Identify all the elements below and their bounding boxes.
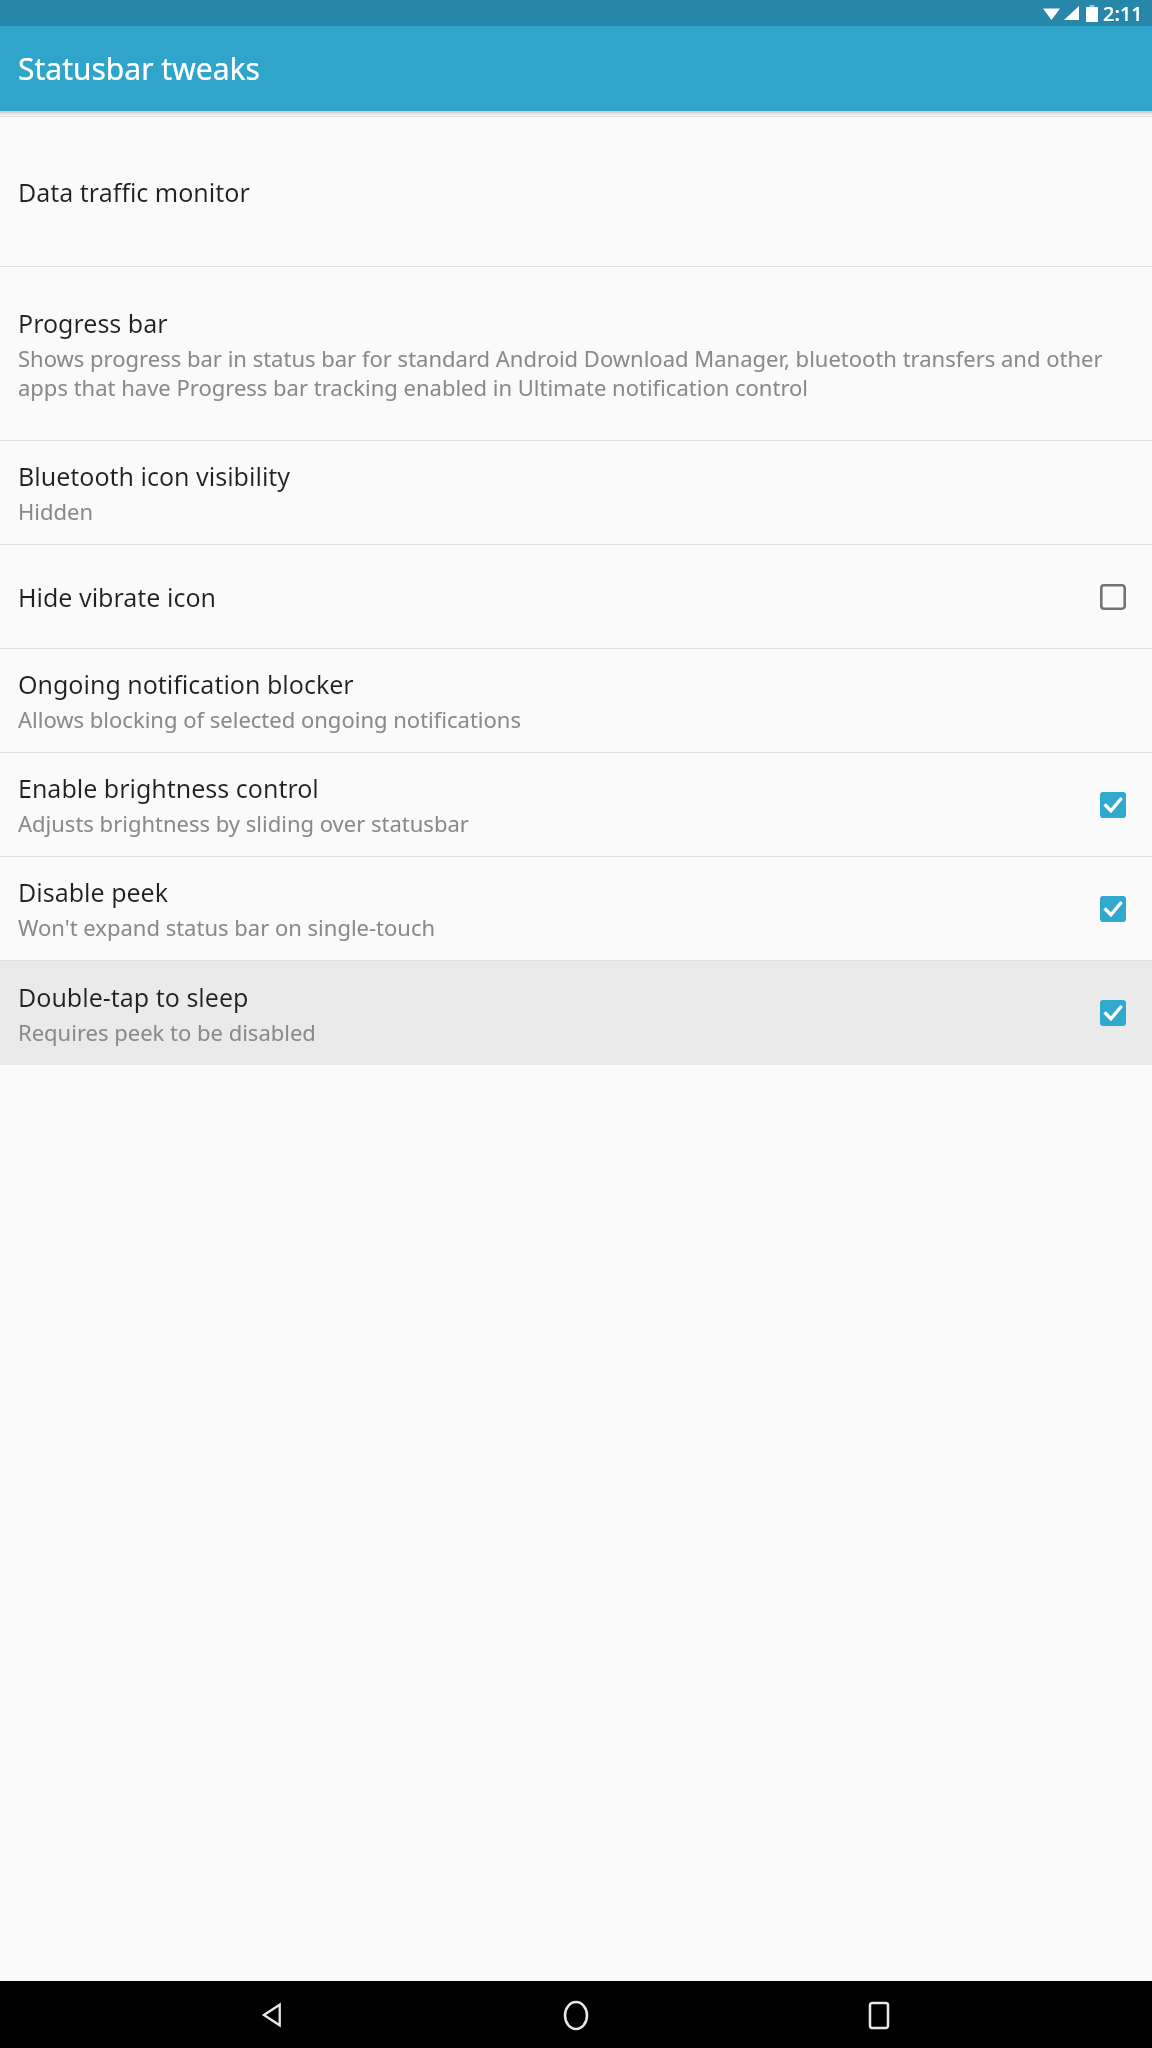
button[interactable]: Checked	[1096, 892, 1130, 926]
button[interactable]: Unchecked	[1096, 580, 1130, 614]
button[interactable]: Home	[546, 1985, 606, 2045]
button[interactable]: Enable brightness control	[0, 753, 1152, 856]
staticText: Ongoing notification blocker	[18, 667, 354, 701]
staticText: Bluetooth icon visibility	[18, 459, 291, 493]
button[interactable]: Data traffic monitor	[0, 117, 1152, 266]
staticText: Allows blocking of selected ongoing noti…	[18, 704, 521, 734]
button[interactable]: Disable peek	[0, 857, 1152, 960]
staticText: Double-tap to sleep	[18, 980, 249, 1014]
staticText: Progress bar	[18, 306, 168, 340]
staticText: Adjusts brightness by sliding over statu…	[18, 808, 469, 838]
staticText: Shows progress bar in status bar for sta…	[18, 343, 1130, 402]
staticText: Enable brightness control	[18, 771, 319, 805]
staticText: Hide vibrate icon	[18, 580, 216, 614]
button[interactable]: Hide vibrate icon	[0, 545, 1152, 648]
staticText: Won't expand status bar on single-touch	[18, 912, 436, 942]
button[interactable]: Bluetooth icon visibility	[0, 441, 1152, 544]
staticText: Data traffic monitor	[18, 175, 250, 209]
button[interactable]: Ongoing notification blocker	[0, 649, 1152, 752]
button[interactable]: Progress bar	[0, 267, 1152, 440]
staticText: 2:11	[1103, 0, 1143, 26]
staticText: Statusbar tweaks	[18, 48, 260, 89]
button[interactable]: Recent apps	[849, 1985, 909, 2045]
staticText: Hidden	[18, 496, 94, 526]
button[interactable]: Double-tap to sleep	[0, 961, 1152, 1065]
button[interactable]: Checked	[1096, 788, 1130, 822]
staticText: Requires peek to be disabled	[18, 1017, 316, 1047]
button[interactable]: Back	[243, 1985, 303, 2045]
button[interactable]: Checked	[1096, 996, 1130, 1030]
staticText: Disable peek	[18, 875, 169, 909]
